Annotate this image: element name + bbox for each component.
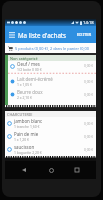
staticText: Pain de mie: [14, 131, 39, 137]
button[interactable]: Lait demi-écrémé: [8, 75, 96, 88]
button[interactable]: EDITER: [75, 28, 94, 42]
staticText: 0,00 €: [84, 93, 93, 97]
staticText: 1 x 1,20 €: [14, 137, 30, 142]
button[interactable]: Beurre doux: [8, 88, 96, 101]
button[interactable]: Menu: [7, 26, 17, 43]
staticText: 0,00 €: [84, 64, 93, 68]
staticText: Beurre doux: [17, 89, 43, 95]
staticText: 1 tranche 1,60 €: [14, 124, 40, 129]
staticText: 0,00 €: [84, 135, 93, 139]
staticText: Oeuf / mes: [17, 61, 40, 67]
staticText: saucisson: [14, 144, 35, 150]
button[interactable]: Back: [17, 163, 31, 177]
staticText: Non catégorisé: [10, 56, 38, 61]
button[interactable]: Recents: [70, 163, 84, 177]
staticText: 1 x 1,05 €: [17, 82, 33, 87]
button[interactable]: 5 produits (0,00 €), 2 dans le panier (0…: [5, 43, 96, 53]
staticText: 14:18: [83, 20, 94, 26]
button[interactable]: Pain de mie: [5, 130, 96, 143]
staticText: EDITER: [77, 32, 92, 38]
staticText: 1/2 boite 0,00 €: [17, 67, 42, 71]
staticText: 2 x 2,10 €: [17, 95, 33, 100]
staticText: 1 baguette 2,20 €: [14, 150, 42, 155]
staticText: Lait demi-écrémé: [17, 76, 53, 82]
staticText: 0,00 €: [84, 148, 93, 152]
button[interactable]: saucisson: [5, 143, 96, 156]
button[interactable]: Oeuf / mes: [8, 61, 96, 71]
staticText: 5 produits (0,00 €), 2 dans le panier (0…: [15, 46, 93, 51]
staticText: 0,00 €: [84, 122, 93, 126]
button[interactable]: Home: [44, 163, 58, 177]
staticText: Ma liste d'achats: [18, 31, 75, 39]
button[interactable]: jambon blanc: [5, 117, 96, 130]
staticText: CHARCUTERIE: [7, 112, 33, 117]
staticText: 0,00 €: [84, 80, 93, 84]
staticText: jambon blanc: [14, 118, 43, 124]
